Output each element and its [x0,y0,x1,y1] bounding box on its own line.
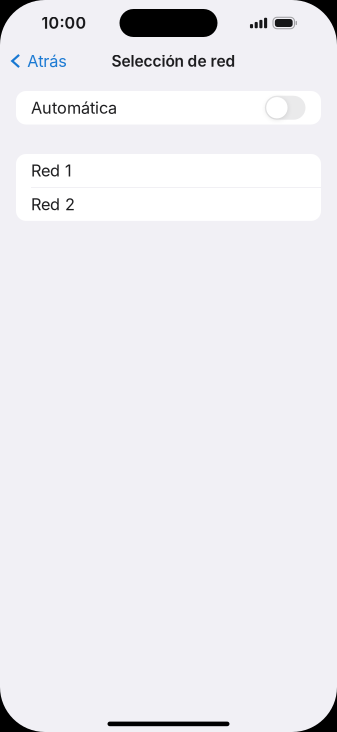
button[interactable]: Red 2 [16,188,321,221]
button[interactable]: Automática, off [265,96,305,120]
staticText: Automática [31,98,117,118]
staticText: Red 1 [31,161,72,180]
staticText: 10:00 [41,13,86,33]
staticText: Selección de red [111,52,235,70]
button[interactable]: Red 1 [16,154,321,187]
staticText: Atrás [27,51,67,71]
staticText: Red 2 [31,195,75,214]
button[interactable]: Automática [16,91,321,124]
button[interactable]: Atrás [0,46,76,76]
